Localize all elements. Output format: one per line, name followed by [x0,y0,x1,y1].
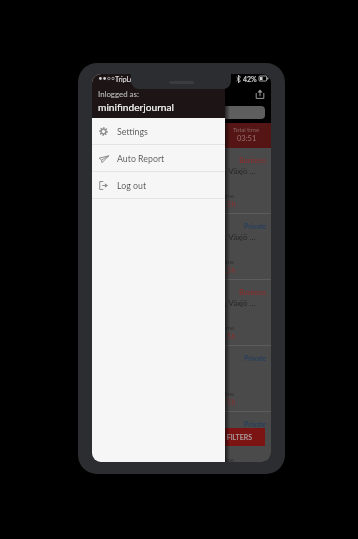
staticText: minifinderjournal [98,101,175,113]
staticText: Hejaregatan 21 Videum Science Par, Växjö… [100,166,256,176]
staticText: 0.5h [221,266,236,275]
staticText: Time [221,456,235,462]
staticText: Business [239,288,267,296]
staticText: 0.5h [221,332,236,341]
staticText: Settings [117,126,148,137]
staticText: Time [221,324,235,331]
staticText: TripLog [115,75,138,83]
button[interactable]: SHOW FILTERS [190,428,265,446]
staticText: Private [244,354,267,362]
staticText: Log out [117,180,147,191]
staticText: Hejaregatan 21 Videum Science Par, Växjö… [100,298,256,308]
staticText: 0.5h [221,398,236,407]
staticText: Hejaregatan 21 Videum Science Par, Växjö… [100,430,256,440]
staticText: Time [221,192,235,199]
button[interactable]: Log out [92,172,225,198]
button[interactable]: Settings [92,118,225,144]
staticText: Business [239,156,267,164]
button[interactable]: Search [122,106,265,119]
button[interactable]: Export [251,85,269,103]
staticText: Time [221,258,235,265]
staticText: Hejaregatan 21 Videum Science Par, Växjö… [100,232,256,242]
staticText: Private [244,420,267,428]
staticText: Private [244,222,267,230]
staticText: 03:51 [237,134,257,143]
staticText: SHOW FILTERS [203,433,252,441]
staticText: Time [221,390,235,397]
staticText: Total time [233,126,260,133]
staticText: 42% [243,75,257,83]
staticText: Auto Report [117,153,165,164]
button[interactable]: Auto Report [92,145,225,171]
staticText: Inlogged as: [98,89,139,98]
staticText: 0.5h [221,200,236,209]
